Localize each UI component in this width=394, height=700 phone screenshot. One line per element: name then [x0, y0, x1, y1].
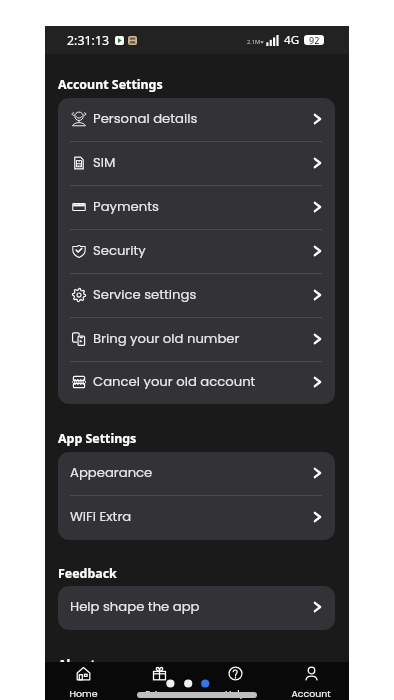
staticText: Bring your old number — [93, 329, 240, 347]
staticText: 92 — [309, 34, 320, 46]
button[interactable]: Cancel your old account — [58, 362, 335, 404]
staticText: Feedback — [58, 565, 117, 582]
button[interactable]: Security — [58, 230, 335, 274]
staticText: Extras — [145, 687, 173, 700]
staticText: 4G — [284, 32, 300, 48]
button[interactable]: Payments — [58, 186, 335, 230]
staticText: Account — [291, 687, 331, 700]
staticText: 2.1M — [247, 38, 260, 46]
button[interactable]: Personal details — [58, 98, 335, 142]
staticText: Security — [93, 241, 146, 259]
button[interactable]: SIM — [58, 142, 335, 186]
staticText: WiFi Extra — [70, 507, 132, 525]
staticText: About — [58, 656, 96, 673]
button[interactable]: Appearance — [58, 452, 335, 496]
staticText: App Settings — [58, 430, 137, 447]
button[interactable]: Extras — [121, 662, 197, 700]
staticText: Help shape the app — [70, 597, 200, 615]
button[interactable]: Bring your old number — [58, 318, 335, 362]
button[interactable]: Help — [197, 662, 273, 700]
button[interactable]: Account — [273, 662, 349, 700]
button[interactable]: Home — [45, 662, 121, 700]
staticText: Cancel your old account — [93, 372, 256, 390]
button[interactable]: Service settings — [58, 274, 335, 318]
staticText: Personal details — [93, 109, 198, 127]
button[interactable]: WiFi Extra — [58, 496, 335, 540]
staticText: Payments — [93, 197, 159, 215]
staticText: Service settings — [93, 285, 197, 303]
staticText: 2:31:13 — [67, 32, 110, 49]
staticText: SIM — [93, 153, 116, 171]
staticText: Home — [69, 687, 98, 700]
staticText: Help — [225, 687, 246, 700]
staticText: Appearance — [70, 463, 153, 481]
staticText: Account Settings — [58, 76, 163, 93]
button[interactable]: Help shape the app — [58, 586, 335, 630]
